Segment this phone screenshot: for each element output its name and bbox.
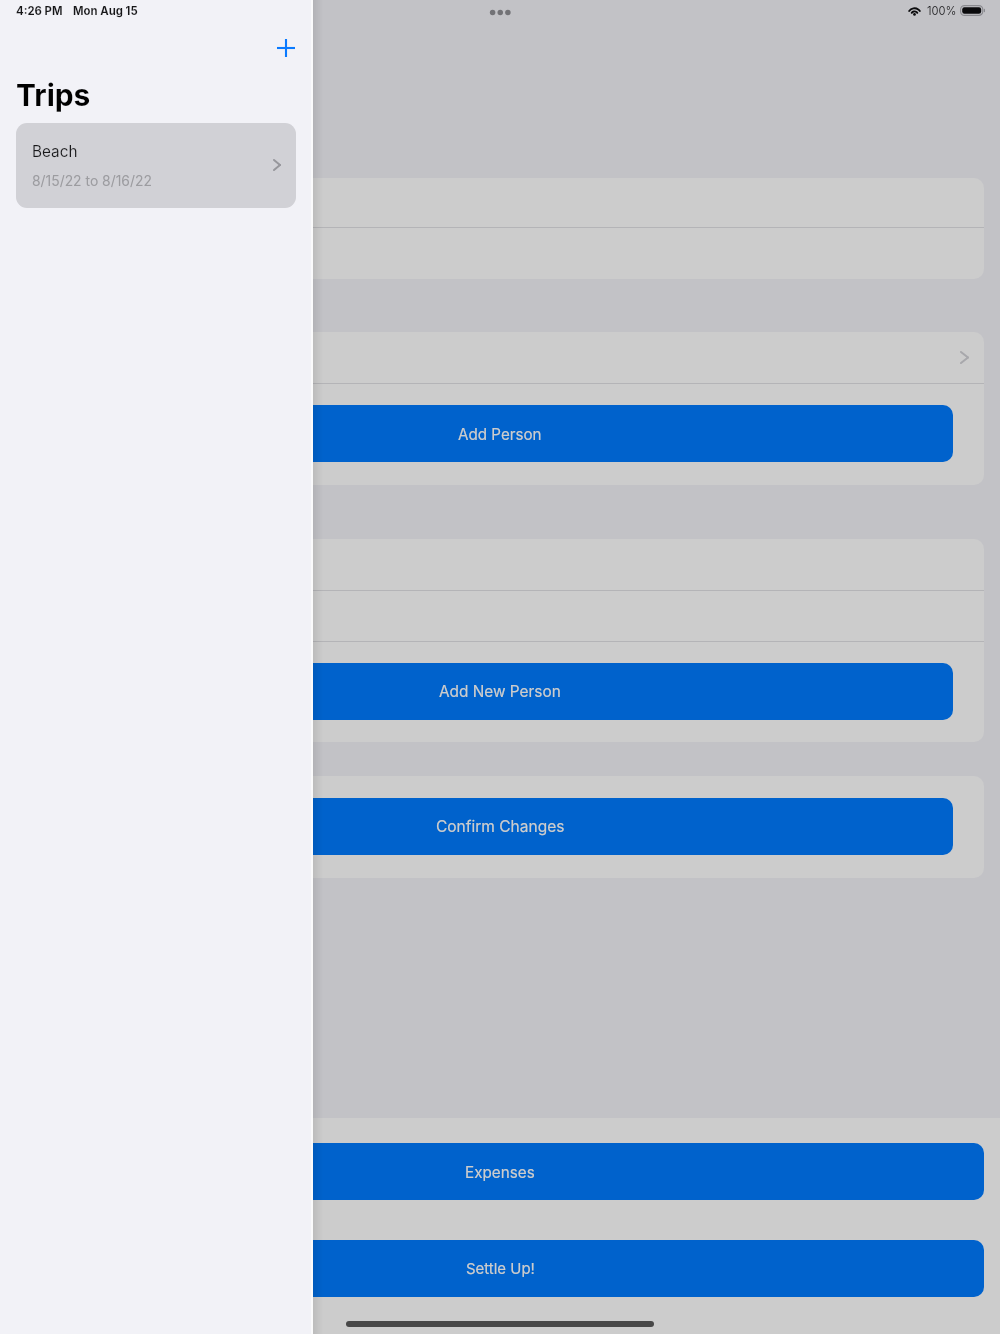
staticText: 100% (927, 4, 957, 17)
staticText: Expenses (465, 1163, 535, 1181)
staticText: Add Person (458, 425, 542, 443)
button[interactable] (16, 539, 984, 590)
button[interactable]: Settle Up! (16, 1240, 984, 1297)
staticText: 4:26 PM (16, 4, 63, 18)
button[interactable]: Add trip (269, 31, 303, 65)
staticText: Beach (32, 142, 78, 161)
staticText: Add New Person (439, 682, 561, 701)
button[interactable] (16, 591, 984, 641)
staticText: Trips (16, 77, 91, 113)
button[interactable]: Expenses (16, 1143, 984, 1200)
staticText: Confirm Changes (436, 817, 565, 836)
button[interactable] (16, 178, 984, 227)
staticText: Mon Aug 15 (73, 4, 138, 18)
other: Open (960, 351, 969, 364)
staticText: Settle Up! (466, 1260, 535, 1278)
button[interactable] (16, 228, 984, 279)
button[interactable]: Open (16, 332, 984, 383)
button[interactable]: Add New Person (47, 663, 953, 720)
staticText: 8/15/22 to 8/16/22 (32, 173, 152, 190)
button[interactable]: Add Person (47, 405, 953, 462)
button[interactable]: Beach (16, 123, 296, 208)
button[interactable]: Confirm Changes (47, 798, 953, 855)
